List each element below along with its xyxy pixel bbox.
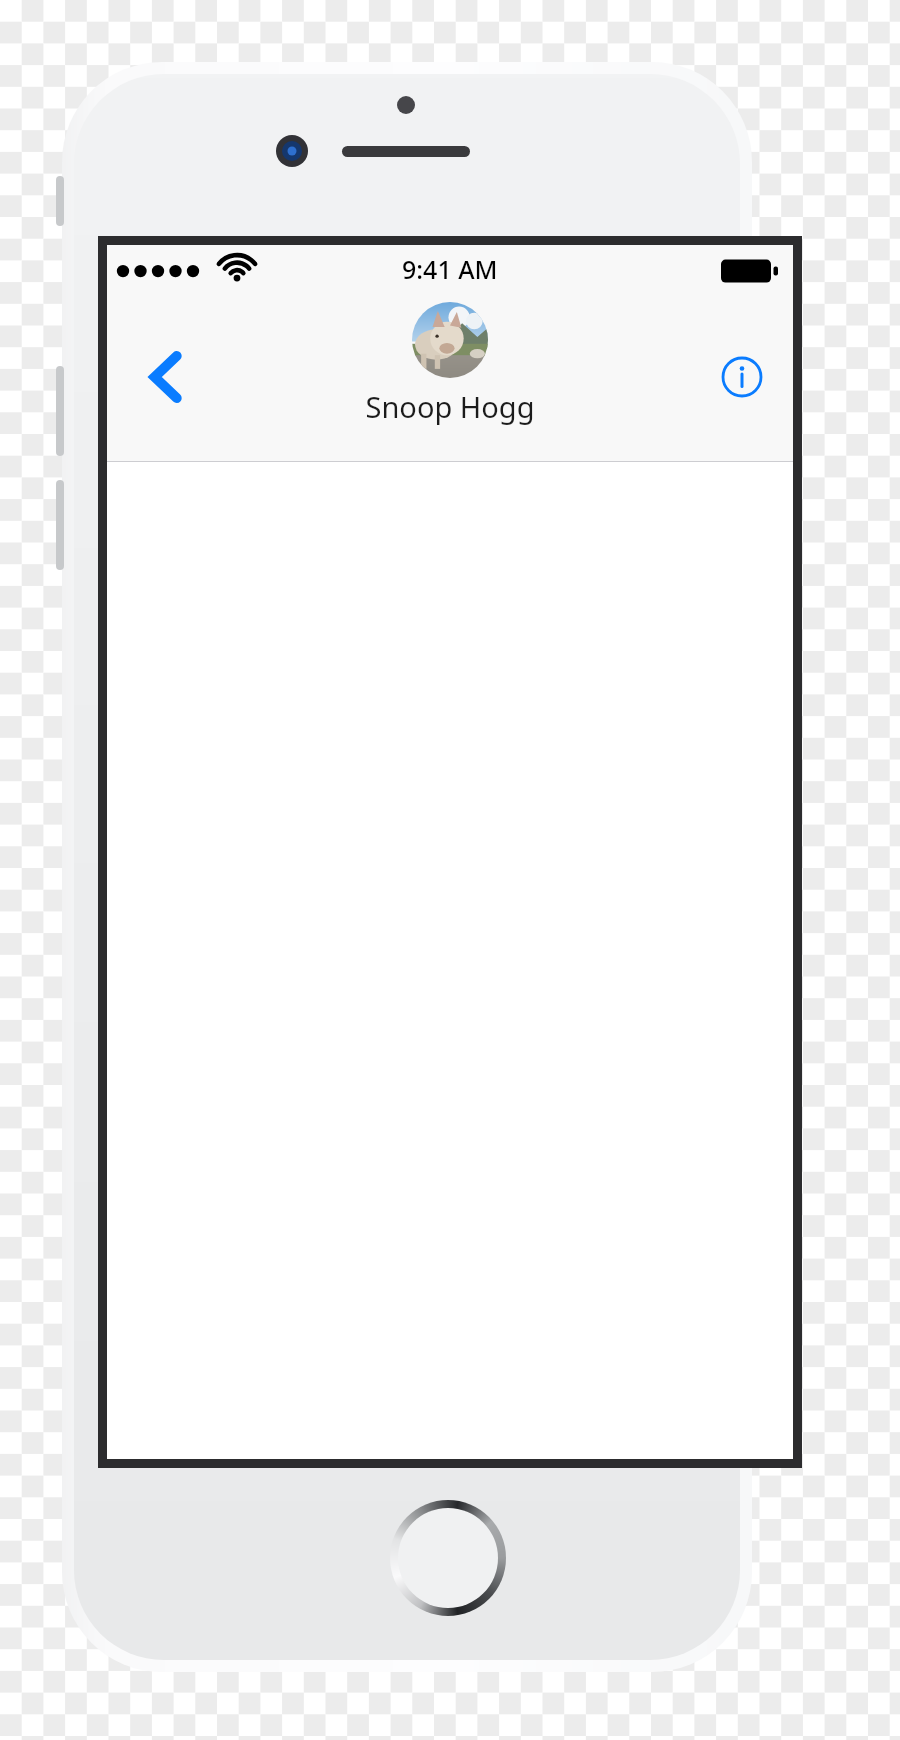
button[interactable]: Snoop Hogg	[365, 302, 535, 426]
staticText: Snoop Hogg	[365, 387, 535, 426]
button[interactable]: Back	[125, 331, 199, 423]
button[interactable]: Details	[711, 346, 773, 408]
staticText: 9:41 AM	[402, 252, 498, 286]
